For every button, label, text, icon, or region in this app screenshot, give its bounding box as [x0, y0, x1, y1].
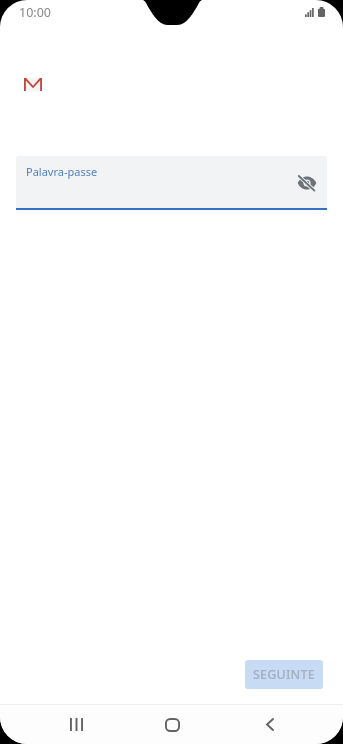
button[interactable]: Recentes: [44, 705, 108, 744]
button[interactable]: SEGUINTE: [245, 660, 323, 689]
staticText: SEGUINTE: [253, 666, 315, 683]
staticText: 10:00: [19, 4, 51, 21]
button[interactable]: Mostrar palavra-passe: [292, 163, 322, 203]
button[interactable]: Palavra-passe: [16, 156, 327, 210]
button[interactable]: Início: [140, 705, 204, 744]
staticText: Palavra-passe: [26, 164, 98, 179]
button[interactable]: Voltar: [238, 705, 302, 744]
